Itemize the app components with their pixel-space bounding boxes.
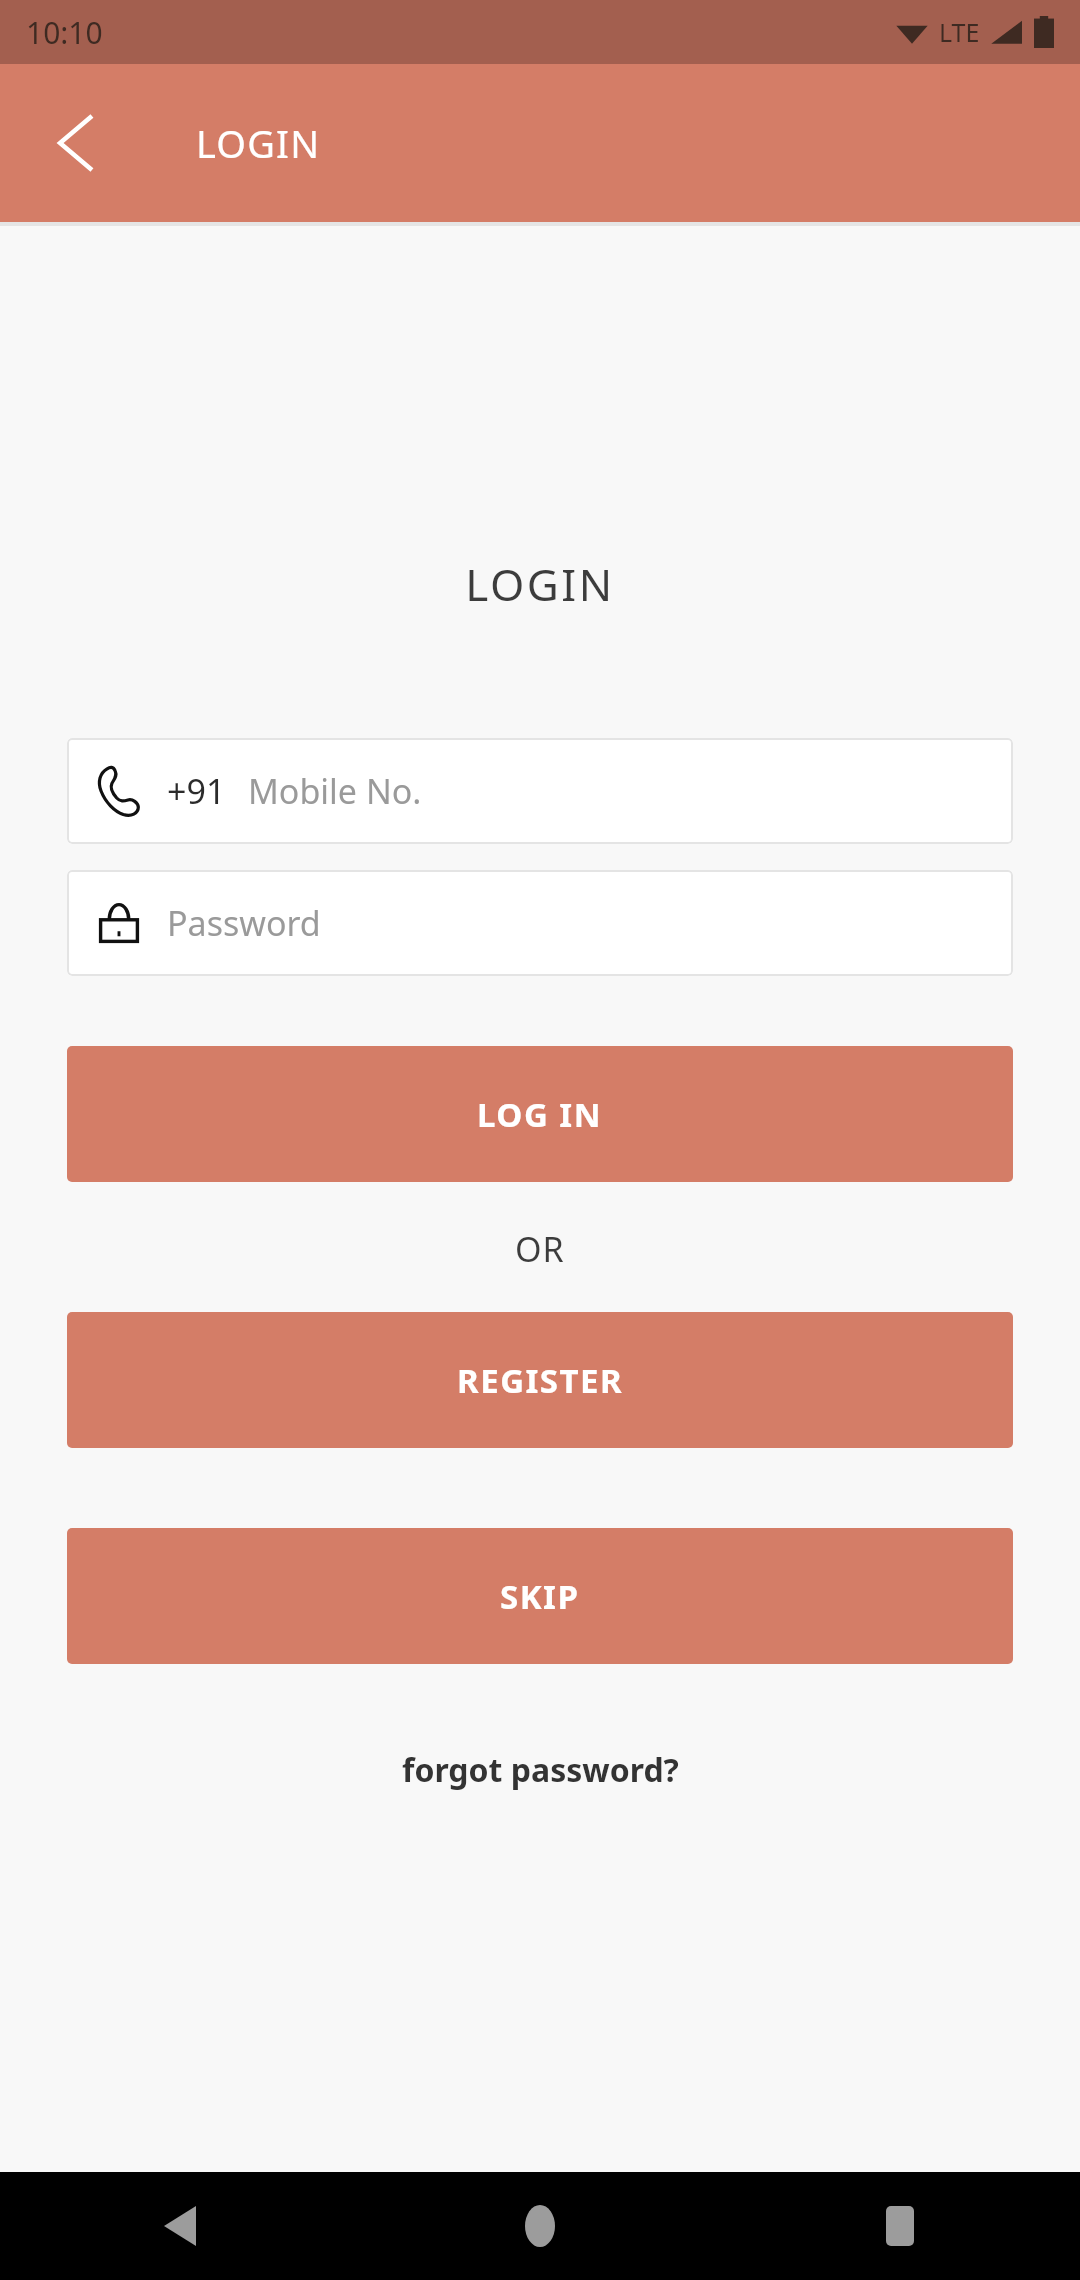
button[interactable]: +91	[67, 738, 1013, 844]
staticText: SKIP	[500, 1574, 580, 1619]
staticText: REGISTER	[457, 1358, 624, 1403]
button[interactable]: forgot password?	[388, 1740, 693, 1800]
staticText: forgot password?	[402, 1748, 679, 1792]
button[interactable]: Home	[360, 2172, 720, 2280]
button[interactable]: Password	[67, 870, 1013, 976]
staticText: LTE	[939, 15, 980, 49]
button[interactable]: Back	[0, 2172, 360, 2280]
staticText: LOGIN	[465, 554, 615, 614]
button[interactable]: Back	[28, 95, 124, 191]
staticText: LOGIN	[196, 117, 321, 169]
staticText: 10:10	[26, 12, 103, 53]
staticText: LOG IN	[477, 1092, 603, 1137]
button[interactable]: Recent apps	[720, 2172, 1080, 2280]
staticText: +91	[167, 768, 226, 814]
button[interactable]: LOG IN	[67, 1046, 1013, 1182]
staticText: OR	[515, 1226, 565, 1272]
staticText: Password	[167, 900, 321, 946]
staticText: Mobile No.	[248, 768, 422, 814]
button[interactable]: SKIP	[67, 1528, 1013, 1664]
button[interactable]: REGISTER	[67, 1312, 1013, 1448]
